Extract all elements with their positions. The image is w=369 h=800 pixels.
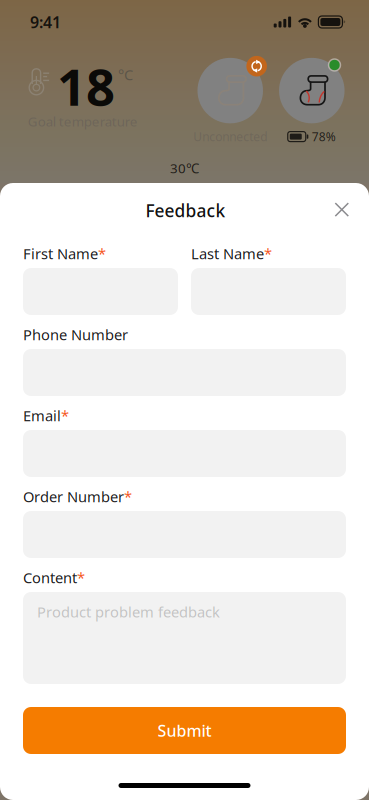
staticText: First Name — [23, 244, 98, 263]
staticText: * — [77, 568, 85, 587]
staticText: Content — [23, 568, 77, 587]
staticText: Feedback — [145, 199, 225, 222]
staticText: 78% — [312, 129, 336, 144]
staticText: * — [264, 244, 272, 263]
staticText: Product problem feedback — [37, 602, 220, 621]
staticText: Email — [23, 406, 61, 425]
staticText: * — [98, 244, 106, 263]
staticText: * — [61, 406, 69, 425]
staticText: 18 — [57, 52, 115, 120]
staticText: Order Number — [23, 487, 124, 506]
staticText: Unconnected — [193, 129, 267, 144]
button[interactable]: Close — [323, 191, 360, 228]
staticText: 9:41 — [30, 11, 61, 33]
staticText: 30℃ — [170, 159, 199, 177]
staticText: °C — [118, 65, 133, 84]
staticText: Last Name — [191, 244, 264, 263]
button[interactable]: Submit — [0, 707, 369, 754]
staticText: Phone Number — [23, 325, 128, 344]
staticText: * — [124, 487, 132, 506]
staticText: Submit — [157, 720, 211, 741]
staticText: Goal temperature — [28, 112, 138, 130]
